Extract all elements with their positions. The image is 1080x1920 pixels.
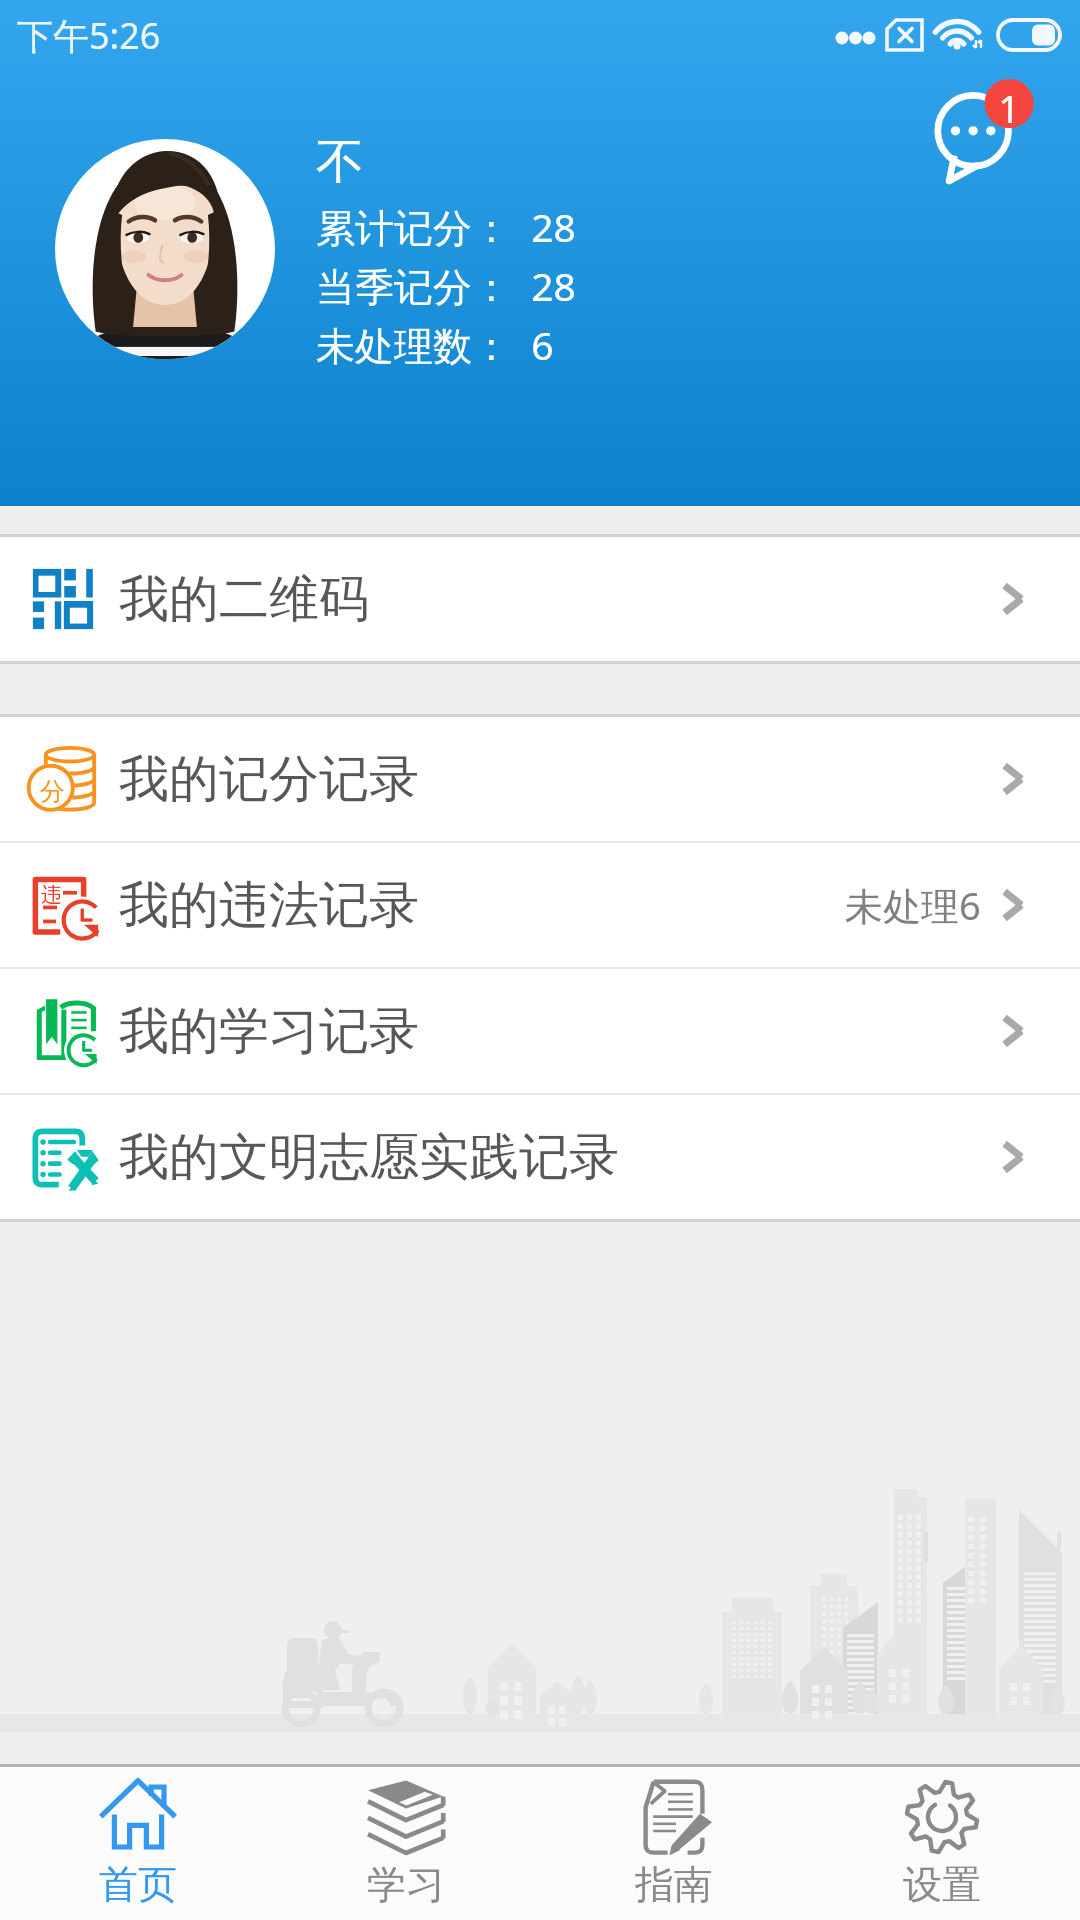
staticText: 学习 bbox=[367, 1860, 445, 1909]
button[interactable]: 设置 bbox=[812, 1767, 1072, 1909]
staticText: 我的二维码 bbox=[119, 568, 369, 631]
staticText: 首页 bbox=[99, 1860, 177, 1909]
staticText: 违 bbox=[41, 882, 62, 908]
staticText: 我的学习记录 bbox=[119, 1000, 419, 1063]
staticText: 未处理6 bbox=[845, 879, 981, 931]
staticText: 下午5:26 bbox=[17, 11, 161, 60]
staticText: 我的违法记录 bbox=[119, 874, 419, 937]
staticText: 分 bbox=[40, 776, 65, 807]
button[interactable]: 首页 bbox=[8, 1767, 268, 1909]
staticText: 指南 bbox=[635, 1860, 713, 1909]
staticText: 我的文明志愿实践记录 bbox=[119, 1126, 619, 1189]
staticText: 未处理数： 6 bbox=[316, 318, 554, 371]
button[interactable]: 我的文明志愿实践记录 bbox=[0, 1095, 1080, 1219]
staticText: 我的记分记录 bbox=[119, 748, 419, 811]
button[interactable]: 我的学习记录 bbox=[0, 969, 1080, 1093]
button[interactable]: 分 bbox=[0, 717, 1080, 841]
staticText: 1 bbox=[995, 82, 1023, 134]
staticText: 累计记分： 28 bbox=[316, 200, 576, 253]
button[interactable]: Messages bbox=[925, 78, 1041, 194]
button[interactable]: 我的二维码 bbox=[0, 537, 1080, 661]
button[interactable]: 学习 bbox=[276, 1767, 536, 1909]
staticText: 设置 bbox=[903, 1860, 981, 1909]
staticText: 不 bbox=[316, 132, 364, 192]
staticText: 当季记分： 28 bbox=[316, 259, 576, 312]
button[interactable]: 指南 bbox=[544, 1767, 804, 1909]
button[interactable]: 违 bbox=[0, 843, 1080, 967]
